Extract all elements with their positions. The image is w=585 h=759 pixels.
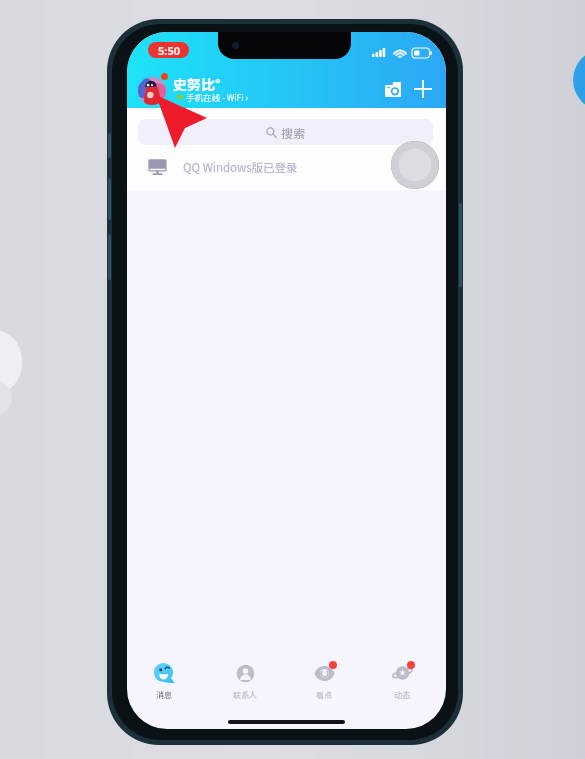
staticText: 史努比°: [173, 74, 221, 94]
staticText: 动态: [394, 689, 410, 701]
button[interactable]: 联系人: [215, 660, 275, 701]
button[interactable]: Profile: [136, 72, 176, 112]
button[interactable]: 看点: [294, 660, 354, 701]
staticText: 联系人: [233, 689, 257, 701]
staticText: 看点: [316, 689, 332, 701]
button[interactable]: Camera: [378, 74, 408, 104]
button[interactable]: 消息: [134, 660, 194, 701]
staticText: 手机在线 - WiFi ›: [186, 91, 249, 103]
staticText: 5:50: [158, 43, 180, 58]
staticText: 消息: [156, 689, 172, 701]
button[interactable]: 搜索: [138, 119, 433, 145]
staticText: 搜索: [281, 124, 306, 141]
staticText: QQ Windows版已登录: [183, 159, 298, 176]
button[interactable]: 手机在线 - WiFi ›: [177, 91, 249, 103]
button[interactable]: Add: [408, 74, 438, 104]
button[interactable]: QQ Windows版已登录: [127, 145, 446, 190]
button[interactable]: 动态: [372, 660, 432, 701]
button[interactable]: Assistive touch: [391, 141, 439, 189]
